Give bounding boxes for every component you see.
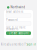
staticText: Use 8 or more characters — [6, 26, 26, 30]
staticText: Sign in — [26, 43, 36, 45]
staticText: Already a member? — [1, 43, 26, 45]
button[interactable]: Already a member? — [0, 43, 37, 45]
staticText: Password — [6, 19, 18, 21]
staticText: Northwind — [10, 6, 25, 8]
button[interactable]: Create account — [6, 31, 31, 35]
staticText: Email address — [6, 11, 23, 13]
staticText: Create account — [8, 32, 28, 34]
